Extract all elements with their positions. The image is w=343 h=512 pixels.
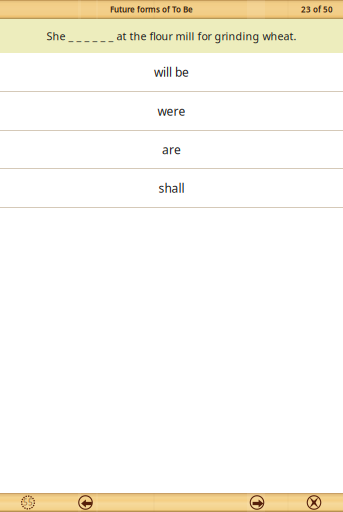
button[interactable]: Close quiz xyxy=(306,494,322,510)
button[interactable]: shall xyxy=(0,169,343,208)
button[interactable]: Time remaining xyxy=(20,494,36,510)
staticText: 23 of 50 xyxy=(301,4,333,15)
button[interactable]: Next question xyxy=(249,494,265,510)
staticText: are xyxy=(162,141,181,157)
staticText: 55 xyxy=(23,497,33,508)
staticText: Future forms of To Be xyxy=(110,4,193,15)
button[interactable]: will be xyxy=(0,53,343,92)
staticText: She _ _ _ _ _ _ at the flour mill for gr… xyxy=(46,29,296,43)
staticText: will be xyxy=(154,64,189,80)
staticText: were xyxy=(157,103,185,119)
button[interactable]: are xyxy=(0,131,343,169)
button[interactable]: Previous question xyxy=(77,494,93,510)
button[interactable]: were xyxy=(0,92,343,131)
staticText: shall xyxy=(158,180,184,196)
